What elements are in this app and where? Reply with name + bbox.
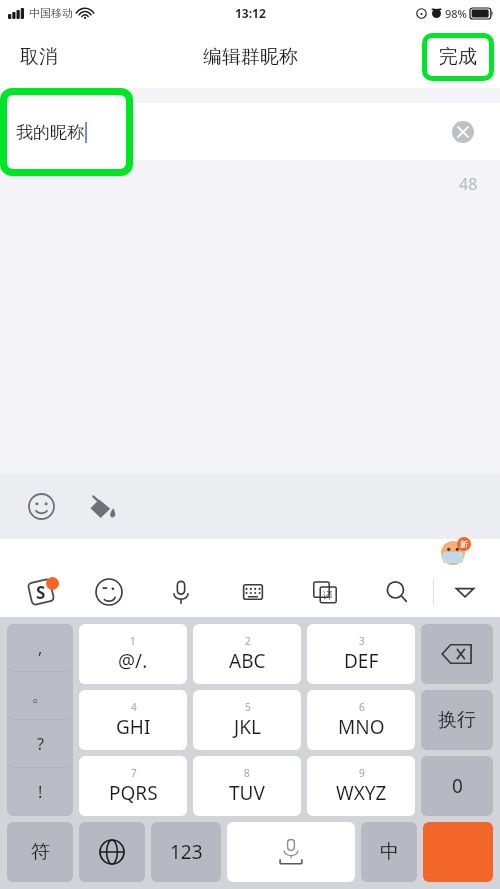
button[interactable]: Emoji [24, 489, 58, 523]
staticText: 8 [244, 766, 250, 780]
staticText: @/. [118, 648, 148, 674]
staticText: ? [37, 733, 44, 755]
staticText: 编辑群昵称 [203, 45, 298, 69]
staticText: 48 [459, 173, 478, 195]
staticText: GHI [116, 714, 151, 740]
button[interactable]: Clear text [452, 121, 474, 143]
staticText: , [38, 637, 43, 659]
button[interactable]: 4 [79, 690, 187, 750]
button[interactable]: Hide keyboard [434, 567, 496, 617]
button[interactable]: 5 [193, 690, 301, 750]
staticText: 完成 [439, 45, 477, 69]
button[interactable]: 取消 [14, 39, 64, 75]
button[interactable]: ? [7, 720, 73, 768]
button[interactable]: 完成 [422, 33, 494, 81]
button[interactable]: 8 [193, 756, 301, 816]
staticText: 3 [359, 634, 365, 648]
button[interactable]: Send [423, 822, 493, 882]
button[interactable]: 9 [307, 756, 415, 816]
staticText: ABC [229, 648, 266, 674]
staticText: DEF [344, 648, 379, 674]
staticText: 13:12 [235, 5, 266, 21]
button[interactable]: 7 [79, 756, 187, 816]
button[interactable]: Sogou input [10, 567, 72, 617]
button[interactable]: , [7, 624, 73, 672]
staticText: 0 [452, 773, 463, 799]
staticText: S [36, 581, 46, 604]
button[interactable]: 换行 [421, 690, 493, 750]
button[interactable]: Space [227, 822, 355, 882]
staticText: 5 [245, 700, 251, 714]
staticText: WXYZ [336, 780, 387, 806]
staticText: MNO [338, 714, 385, 740]
staticText: 译 [323, 589, 333, 602]
staticText: 123 [170, 839, 203, 865]
staticText: TUV [229, 780, 265, 806]
button[interactable]: Emoji keyboard [72, 567, 145, 617]
staticText: 4 [131, 700, 137, 714]
button[interactable]: 0 [421, 756, 493, 816]
button[interactable]: 符 [7, 822, 73, 882]
button[interactable]: 1 [79, 624, 187, 684]
staticText: 2 [245, 634, 251, 648]
staticText: 1 [130, 634, 136, 648]
staticText: 中国移动 [29, 6, 73, 20]
staticText: 6 [359, 700, 365, 714]
staticText: 新 [460, 539, 468, 549]
staticText: 换行 [438, 708, 476, 732]
button[interactable]: 2 [193, 624, 301, 684]
button[interactable]: Delete [421, 624, 493, 684]
staticText: 7 [131, 766, 137, 780]
button[interactable]: ! [7, 768, 73, 816]
staticText: 。 [32, 686, 48, 706]
button[interactable]: Switch language [79, 822, 145, 882]
button[interactable]: 123 [151, 822, 221, 882]
staticText: 取消 [20, 45, 58, 69]
button[interactable]: 6 [307, 690, 415, 750]
staticText: 98% [445, 6, 467, 21]
staticText: ! [38, 781, 43, 803]
button[interactable]: Voice input [145, 567, 217, 617]
button[interactable]: 。 [7, 672, 73, 720]
button[interactable]: Translate [289, 567, 361, 617]
button[interactable]: Background color [83, 488, 119, 524]
staticText: 我的昵称 [16, 122, 84, 143]
staticText: JKL [234, 714, 261, 740]
staticText: 9 [359, 766, 365, 780]
button[interactable]: Search [361, 567, 433, 617]
staticText: PQRS [109, 780, 158, 806]
button[interactable]: Keyboard settings [217, 567, 289, 617]
staticText: 符 [31, 840, 50, 864]
button[interactable]: Clear text [0, 103, 500, 160]
staticText: 中 [380, 840, 399, 864]
button[interactable]: 中 [361, 822, 417, 882]
button[interactable]: 3 [307, 624, 415, 684]
